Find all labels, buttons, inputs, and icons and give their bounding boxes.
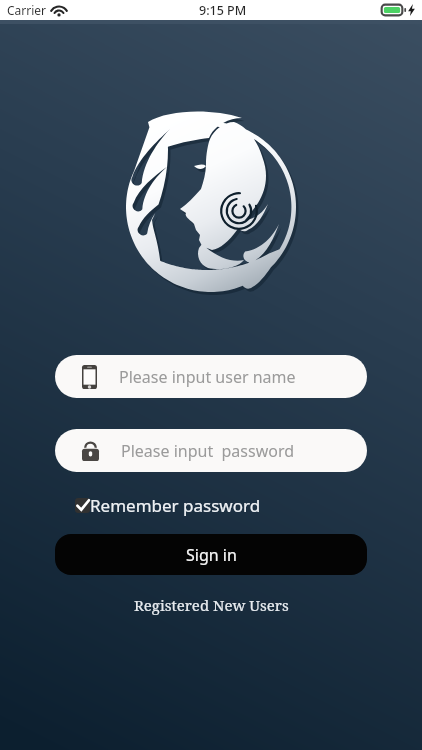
staticText: Please input password (121, 440, 295, 462)
staticText: Carrier (7, 2, 47, 18)
staticText: 9:15 PM (199, 2, 247, 19)
button[interactable]: Remember password (75, 494, 261, 517)
button[interactable]: Registered New Users (134, 595, 289, 615)
staticText: Please input user name (119, 366, 296, 388)
staticText: Sign in (186, 544, 237, 566)
button[interactable]: Sign in (55, 534, 367, 575)
staticText: Remember password (90, 494, 261, 517)
button[interactable]: Please input user name (55, 355, 367, 398)
button[interactable]: Please input password (55, 429, 367, 472)
